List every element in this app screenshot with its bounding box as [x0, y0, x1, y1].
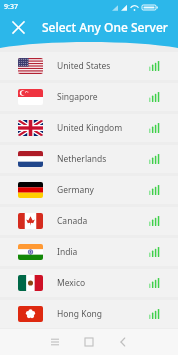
button[interactable]: India [0, 238, 178, 266]
button[interactable]: Netherlands [0, 145, 178, 173]
button[interactable]: Home [72, 329, 106, 355]
staticText: United Kingdom [57, 122, 123, 134]
button[interactable]: United States [0, 52, 178, 80]
button[interactable]: Mexico [0, 269, 178, 297]
staticText: Mexico [57, 277, 86, 289]
button[interactable]: Singapore [0, 83, 178, 111]
staticText: Germany [57, 184, 94, 196]
button[interactable]: Recents [38, 329, 72, 355]
button[interactable]: Hong Kong [0, 300, 178, 328]
staticText: Singapore [57, 91, 98, 103]
staticText: Hong Kong [57, 308, 103, 320]
button[interactable]: Germany [0, 176, 178, 204]
button[interactable]: Close [6, 15, 30, 39]
button[interactable]: Back [106, 329, 140, 355]
staticText: Select Any One Server [42, 19, 168, 35]
button[interactable]: United Kingdom [0, 114, 178, 142]
staticText: India [57, 246, 78, 258]
button[interactable]: Canada [0, 207, 178, 235]
staticText: United States [57, 60, 111, 72]
staticText: 9:37 [4, 2, 18, 12]
staticText: Netherlands [57, 153, 107, 165]
staticText: Canada [57, 215, 88, 227]
